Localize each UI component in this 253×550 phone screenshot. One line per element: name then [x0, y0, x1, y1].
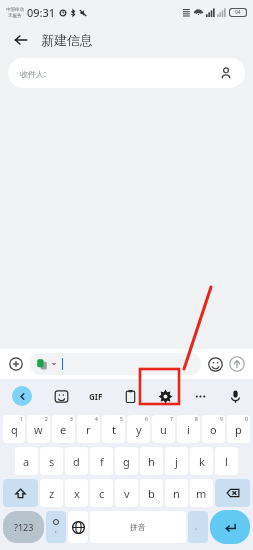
staticText: 中国移动 [6, 7, 24, 13]
other: Choose contact [219, 66, 233, 80]
button[interactable]: Enter [210, 510, 250, 544]
button[interactable]: Change language [68, 511, 88, 543]
button[interactable]: c [90, 479, 113, 507]
button[interactable]: Voice input [218, 379, 253, 413]
button[interactable]: a [15, 447, 38, 475]
button[interactable]: l [215, 447, 238, 475]
button[interactable]: o [202, 415, 225, 443]
button[interactable]: Back [10, 29, 32, 51]
button[interactable]: ?123 [3, 511, 44, 543]
staticText: 1 [20, 416, 23, 423]
button[interactable]: r [77, 415, 100, 443]
button[interactable]: s [40, 447, 63, 475]
staticText: r [86, 422, 91, 437]
staticText: 2 [45, 416, 48, 423]
staticText: 4 [95, 416, 98, 423]
button[interactable]: Backspace [215, 479, 250, 507]
button[interactable]: p [227, 415, 250, 443]
staticText: d [73, 454, 80, 469]
staticText: 收件人: [20, 68, 47, 79]
button[interactable]: k [190, 447, 213, 475]
button[interactable]: Period [188, 511, 208, 543]
button[interactable]: n [165, 479, 188, 507]
button[interactable]: b [140, 479, 163, 507]
button[interactable] [30, 353, 201, 375]
staticText: 09:31 [27, 5, 56, 20]
staticText: GIF [89, 391, 103, 402]
staticText: 。 [195, 523, 201, 531]
staticText: p [235, 422, 242, 437]
staticText: 拼音 [130, 522, 146, 532]
button[interactable]: t [102, 415, 125, 443]
button[interactable]: 拼音 [90, 511, 186, 543]
button[interactable]: Stickers [44, 379, 78, 413]
staticText: t [112, 422, 116, 437]
button[interactable]: j [165, 447, 188, 475]
staticText: 8 [195, 416, 198, 423]
button[interactable]: Send [227, 354, 247, 374]
staticText: u [160, 422, 167, 437]
staticText: y [136, 422, 142, 437]
button[interactable]: f [90, 447, 113, 475]
staticText: h [148, 454, 155, 469]
button[interactable]: Settings [148, 379, 183, 413]
button[interactable]: u [152, 415, 175, 443]
staticText: 无服务 [8, 13, 22, 19]
button[interactable]: i [177, 415, 200, 443]
button[interactable]: Collapse toolbar [12, 386, 32, 406]
button[interactable]: w [27, 415, 50, 443]
button[interactable]: Add attachment [6, 354, 26, 374]
staticText: m [196, 486, 207, 501]
staticText: 7 [170, 416, 173, 423]
staticText: k [199, 454, 205, 469]
staticText: 3 [70, 416, 73, 423]
staticText: 5 [120, 416, 123, 423]
staticText: , [55, 525, 57, 535]
button[interactable]: Shift [3, 479, 38, 507]
staticText: i [187, 422, 190, 437]
button[interactable]: GIF [78, 379, 113, 413]
staticText: s [49, 454, 55, 469]
staticText: e [60, 422, 67, 437]
button[interactable]: d [65, 447, 88, 475]
button[interactable]: z [40, 479, 63, 507]
button[interactable]: q [3, 415, 25, 443]
button[interactable]: m [190, 479, 213, 507]
staticText: g [123, 454, 130, 469]
button[interactable]: g [115, 447, 138, 475]
button[interactable]: Comma and emoji [46, 511, 66, 543]
staticText: n [173, 486, 180, 501]
staticText: 新建信息 [41, 32, 93, 48]
button[interactable]: More options [183, 379, 218, 413]
button[interactable]: Clipboard [113, 379, 148, 413]
staticText: z [49, 486, 55, 501]
staticText: 6 [145, 416, 148, 423]
staticText: c [99, 486, 105, 501]
button[interactable]: v [115, 479, 138, 507]
staticText: x [74, 486, 80, 501]
staticText: v [124, 486, 130, 501]
staticText: q [11, 422, 18, 437]
staticText: j [175, 454, 178, 469]
staticText: 9 [220, 416, 223, 423]
staticText: w [34, 422, 43, 437]
button[interactable]: 收件人: [8, 58, 245, 88]
staticText: o [210, 422, 217, 437]
button[interactable]: y [127, 415, 150, 443]
button[interactable]: x [65, 479, 88, 507]
staticText: 0 [245, 416, 248, 423]
button[interactable]: h [140, 447, 163, 475]
staticText: a [23, 454, 30, 469]
button[interactable]: Emoji [205, 354, 225, 374]
staticText: l [225, 454, 228, 469]
staticText: ?123 [14, 521, 34, 533]
staticText: 94 [235, 9, 241, 16]
staticText: b [148, 486, 155, 501]
staticText: f [100, 454, 104, 469]
button[interactable]: e [52, 415, 75, 443]
